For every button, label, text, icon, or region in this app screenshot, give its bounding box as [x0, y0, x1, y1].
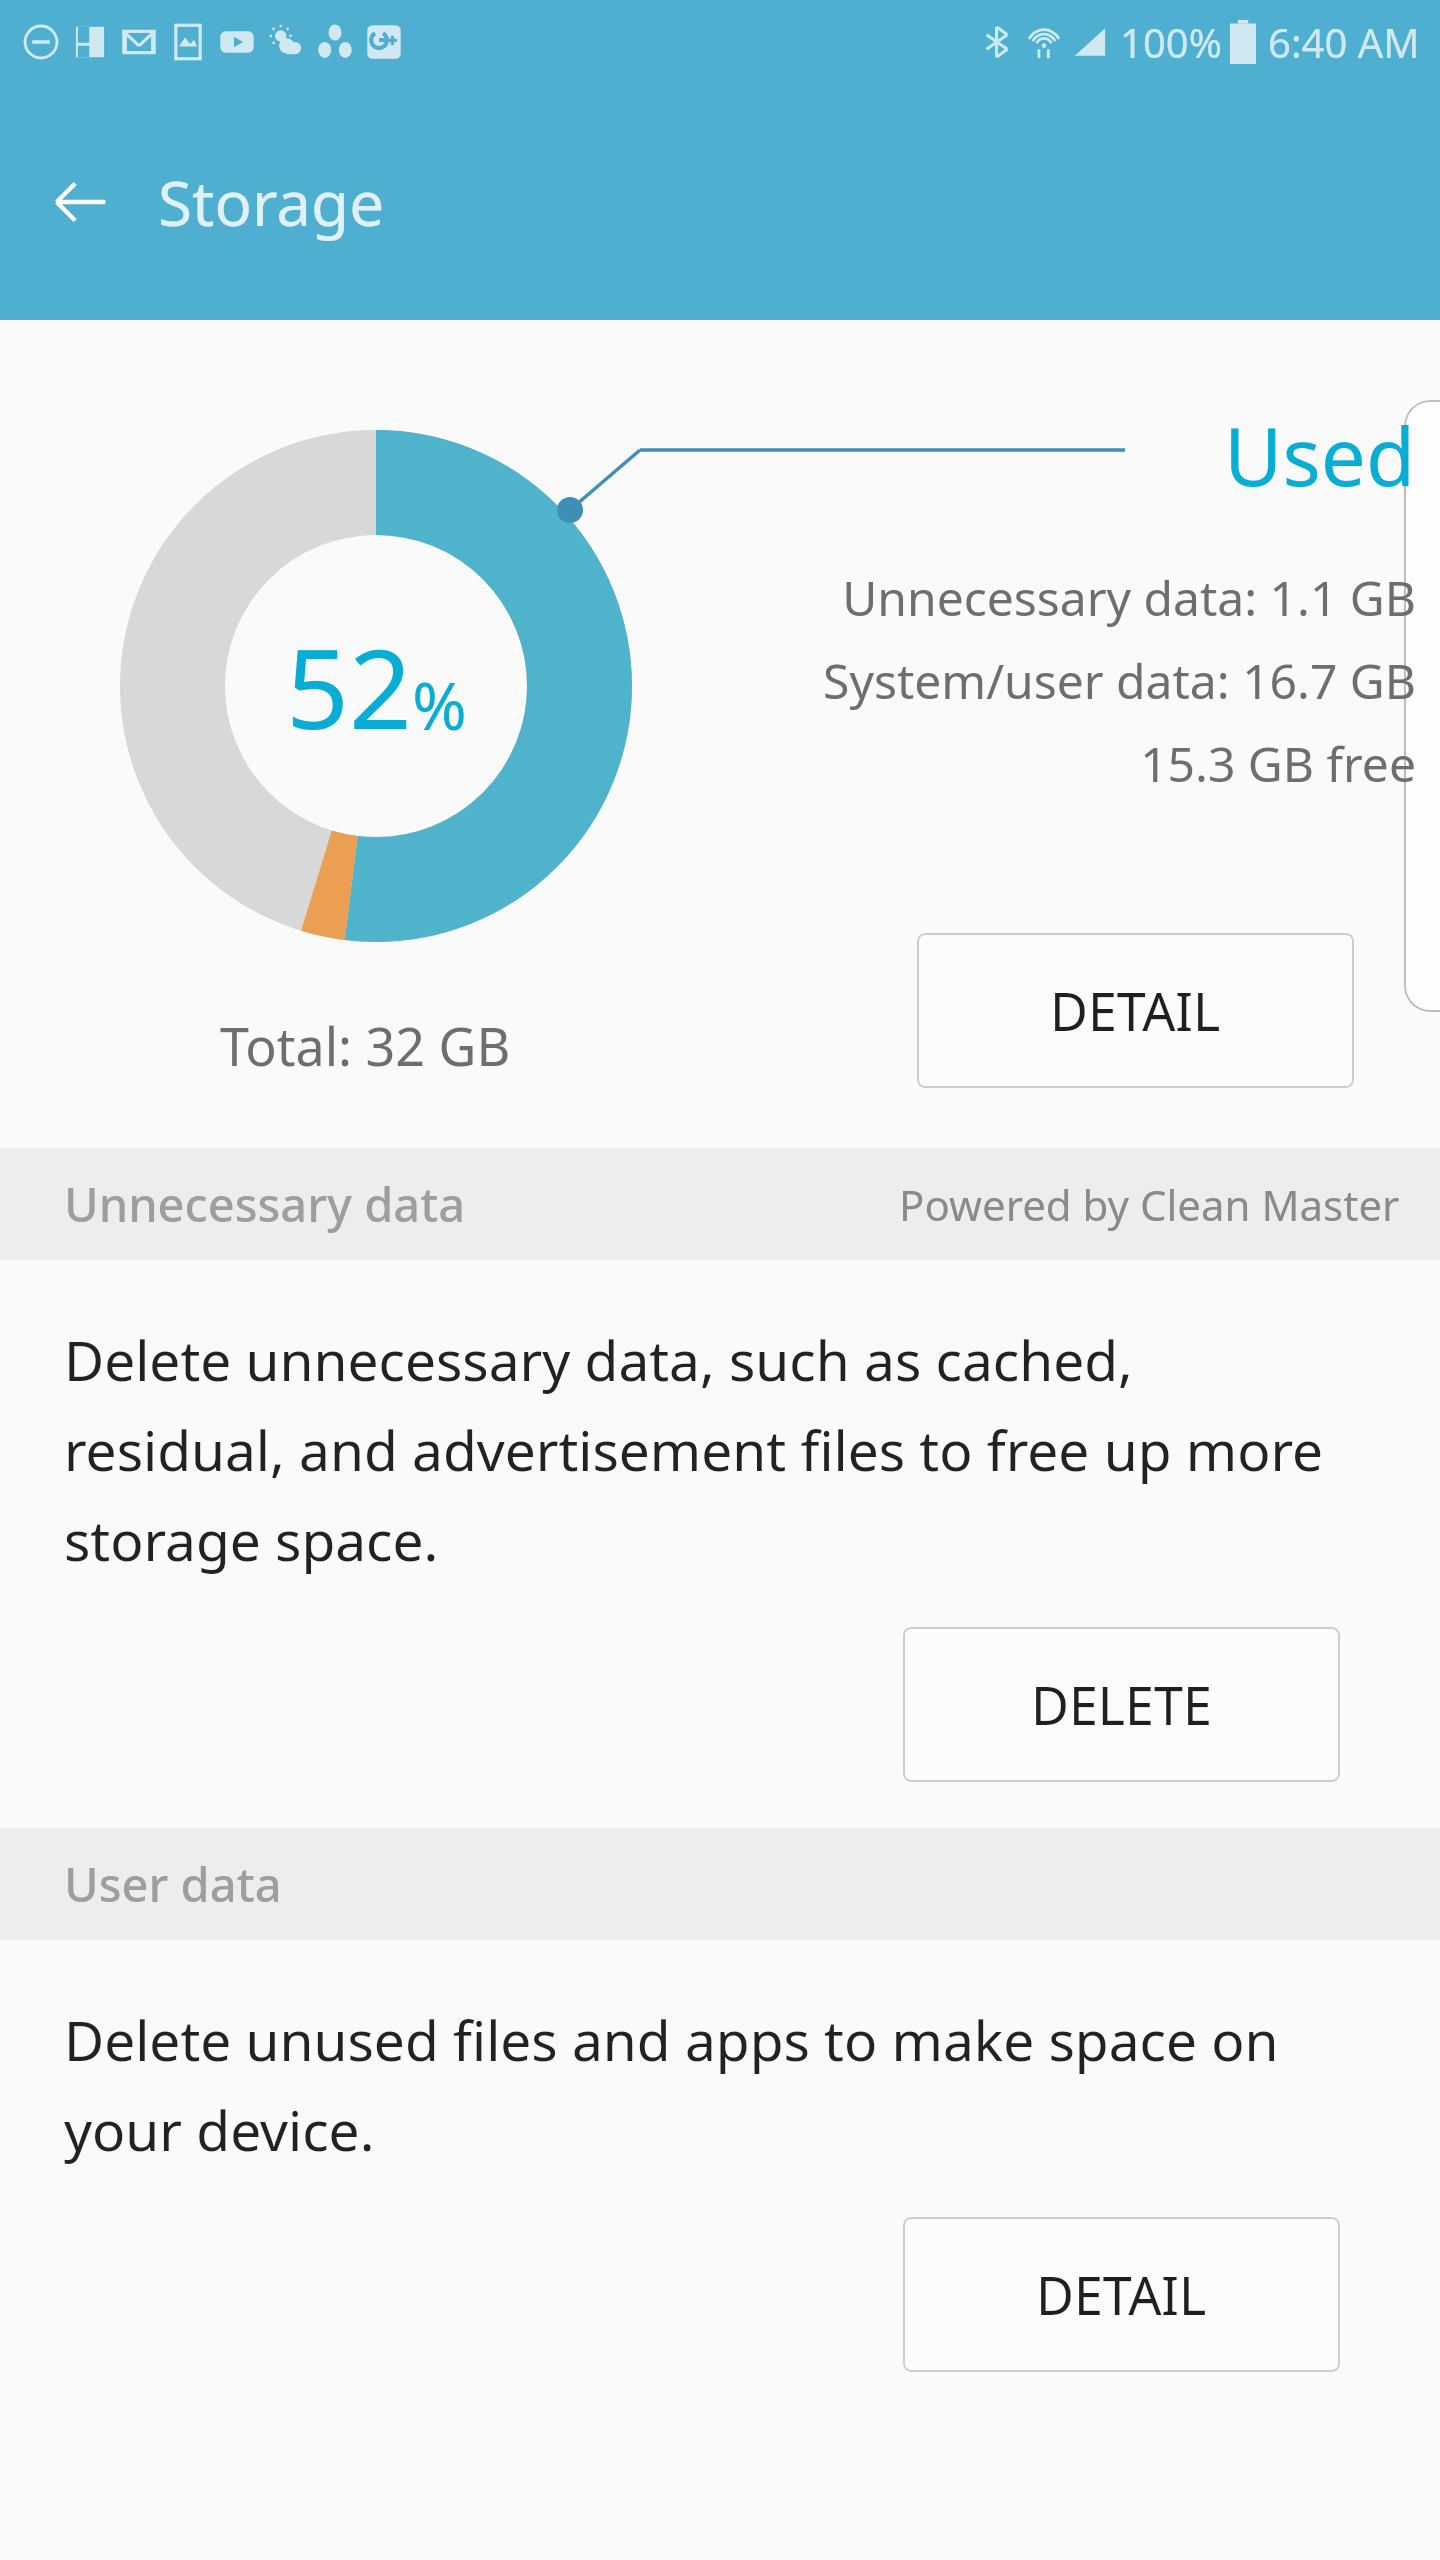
- staticText: DETAIL: [1036, 2259, 1207, 2330]
- staticText: 6:40 AM: [1268, 15, 1420, 69]
- staticText: Unnecessary data: [64, 1172, 466, 1236]
- staticText: %: [412, 659, 467, 749]
- staticText: 15.3 GB free: [1140, 731, 1416, 796]
- button[interactable]: DELETE: [903, 1627, 1340, 1782]
- staticText: DETAIL: [1050, 975, 1221, 1046]
- staticText: Used: [1224, 400, 1416, 509]
- staticText: Delete unused files and apps to make spa…: [64, 2002, 1340, 2167]
- staticText: User data: [64, 1852, 282, 1916]
- staticText: Storage: [158, 160, 385, 244]
- staticText: Unnecessary data: 1.1 GB: [842, 565, 1416, 630]
- staticText: Total: 32 GB: [220, 1010, 511, 1081]
- staticText: Powered by Clean Master: [899, 1176, 1400, 1233]
- staticText: DELETE: [1031, 1669, 1212, 1740]
- button[interactable]: Back: [44, 165, 118, 239]
- button[interactable]: DETAIL: [917, 933, 1354, 1088]
- staticText: 52: [286, 611, 412, 761]
- staticText: System/user data: 16.7 GB: [823, 648, 1416, 713]
- staticText: Delete unnecessary data, such as cached,…: [64, 1322, 1340, 1577]
- button[interactable]: DETAIL: [903, 2217, 1340, 2372]
- staticText: 100%: [1120, 15, 1222, 69]
